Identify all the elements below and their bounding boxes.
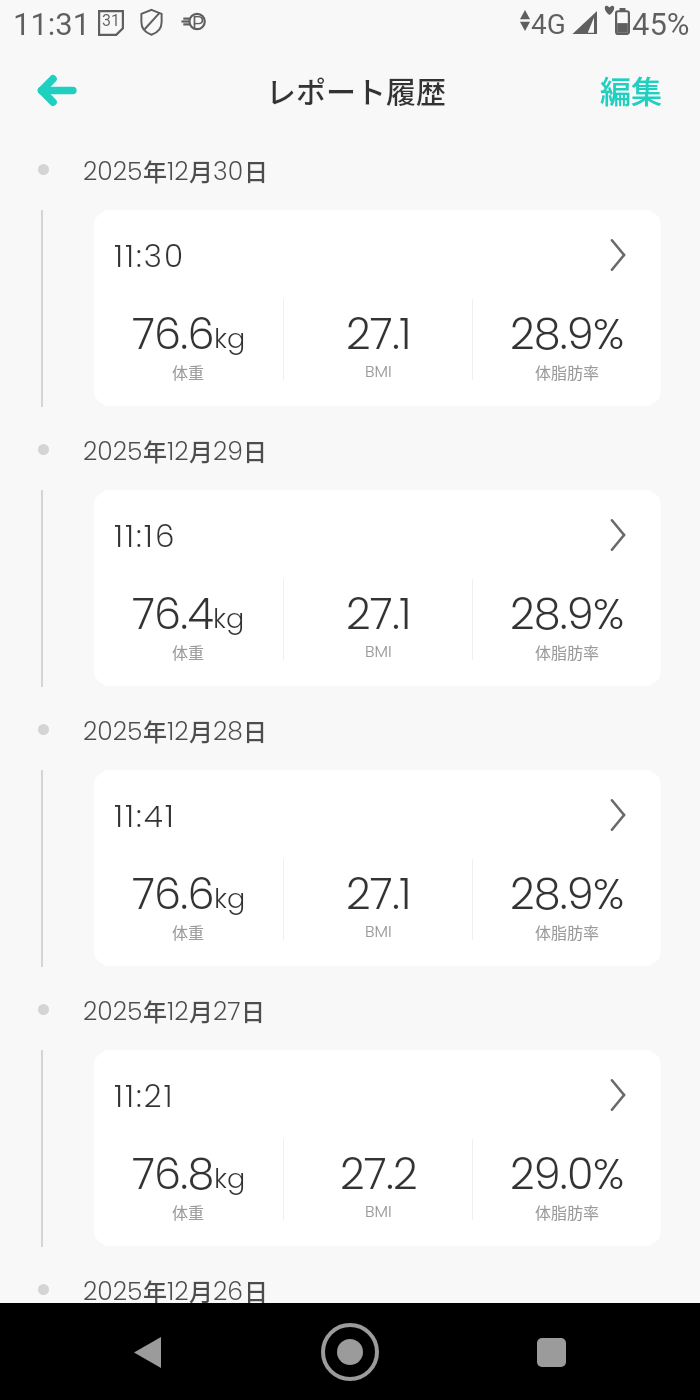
staticText: 日 bbox=[241, 993, 265, 1028]
button[interactable]: 11:16 bbox=[94, 490, 661, 686]
button[interactable]: Back bbox=[21, 54, 93, 126]
staticText: 29.0 bbox=[510, 1144, 593, 1204]
staticText: P bbox=[192, 11, 204, 33]
staticText: 27.1 bbox=[346, 584, 411, 644]
staticText: BMI bbox=[365, 920, 392, 942]
staticText: 12 bbox=[167, 434, 189, 469]
staticText: 27.1 bbox=[346, 304, 411, 364]
staticText: kg bbox=[213, 600, 245, 638]
staticText: 28.9 bbox=[510, 864, 593, 924]
staticText: 体重 bbox=[172, 360, 205, 383]
staticText: 11:30 bbox=[114, 234, 186, 277]
staticText: BMI bbox=[365, 640, 392, 662]
staticText: 29 bbox=[213, 434, 243, 469]
staticText: % bbox=[593, 584, 625, 644]
staticText: 月 bbox=[189, 153, 213, 188]
staticText: 2025 bbox=[83, 434, 143, 469]
staticText: BMI bbox=[365, 1200, 392, 1222]
button[interactable]: Back bbox=[112, 1317, 182, 1387]
staticText: 12 bbox=[167, 994, 189, 1029]
button[interactable]: 11:30 bbox=[94, 210, 661, 406]
staticText: 年 bbox=[143, 1273, 167, 1308]
staticText: 2025 bbox=[83, 154, 143, 189]
staticText: 31 bbox=[102, 11, 120, 30]
staticText: % bbox=[593, 864, 625, 924]
staticText: 27.2 bbox=[340, 1144, 417, 1204]
staticText: 11:41 bbox=[114, 794, 176, 837]
staticText: 28.9 bbox=[510, 584, 593, 644]
staticText: 体脂肪率 bbox=[535, 1200, 600, 1223]
staticText: % bbox=[593, 304, 625, 364]
staticText: 26 bbox=[213, 1274, 244, 1309]
staticText: 2025 bbox=[83, 1274, 143, 1309]
staticText: 2025 bbox=[83, 714, 143, 749]
button[interactable]: Recent apps bbox=[516, 1317, 586, 1387]
staticText: 27.1 bbox=[346, 864, 411, 924]
staticText: 日 bbox=[243, 713, 267, 748]
staticText: 月 bbox=[189, 993, 213, 1028]
staticText: 月 bbox=[189, 713, 213, 748]
staticText: 体脂肪率 bbox=[535, 920, 600, 943]
staticText: 日 bbox=[244, 1273, 268, 1308]
staticText: 体脂肪率 bbox=[535, 640, 600, 663]
staticText: 11:16 bbox=[114, 514, 177, 557]
staticText: 12 bbox=[167, 714, 189, 749]
staticText: 日 bbox=[244, 153, 268, 188]
staticText: 年 bbox=[143, 433, 167, 468]
staticText: 30 bbox=[213, 154, 244, 189]
staticText: 体重 bbox=[172, 640, 205, 663]
staticText: 年 bbox=[143, 153, 167, 188]
button[interactable]: Home bbox=[315, 1317, 385, 1387]
staticText: kg bbox=[214, 1160, 246, 1198]
staticText: BMI bbox=[365, 360, 392, 382]
staticText: 2025 bbox=[83, 994, 143, 1029]
staticText: 体脂肪率 bbox=[535, 360, 600, 383]
staticText: レポート履歴 bbox=[266, 68, 446, 111]
staticText: 年 bbox=[143, 713, 167, 748]
staticText: 76.6 bbox=[132, 304, 214, 364]
staticText: 12 bbox=[167, 1274, 189, 1309]
staticText: 体重 bbox=[172, 920, 205, 943]
button[interactable]: 11:41 bbox=[94, 770, 661, 966]
staticText: 11:31 bbox=[13, 6, 91, 42]
staticText: 12 bbox=[167, 154, 189, 189]
staticText: 28 bbox=[213, 714, 243, 749]
staticText: kg bbox=[214, 880, 246, 918]
staticText: 月 bbox=[189, 433, 213, 468]
staticText: 日 bbox=[243, 433, 267, 468]
staticText: 76.6 bbox=[132, 864, 214, 924]
staticText: % bbox=[593, 1144, 625, 1204]
staticText: 45% bbox=[632, 6, 690, 42]
staticText: 76.4 bbox=[132, 584, 213, 644]
staticText: 27 bbox=[213, 994, 241, 1029]
staticText: 月 bbox=[189, 1273, 213, 1308]
button[interactable]: 11:21 bbox=[94, 1050, 661, 1246]
staticText: 28.9 bbox=[510, 304, 593, 364]
staticText: 11:05 bbox=[114, 1344, 187, 1387]
staticText: 11:21 bbox=[114, 1074, 175, 1117]
staticText: 年 bbox=[143, 993, 167, 1028]
staticText: 体重 bbox=[172, 1200, 205, 1223]
staticText: 編集 bbox=[600, 67, 662, 112]
button[interactable]: 編集 bbox=[580, 55, 700, 124]
button[interactable]: 11:05 bbox=[94, 1330, 661, 1400]
staticText: kg bbox=[214, 320, 246, 358]
staticText: 76.8 bbox=[132, 1144, 214, 1204]
staticText: 4G bbox=[531, 8, 566, 41]
